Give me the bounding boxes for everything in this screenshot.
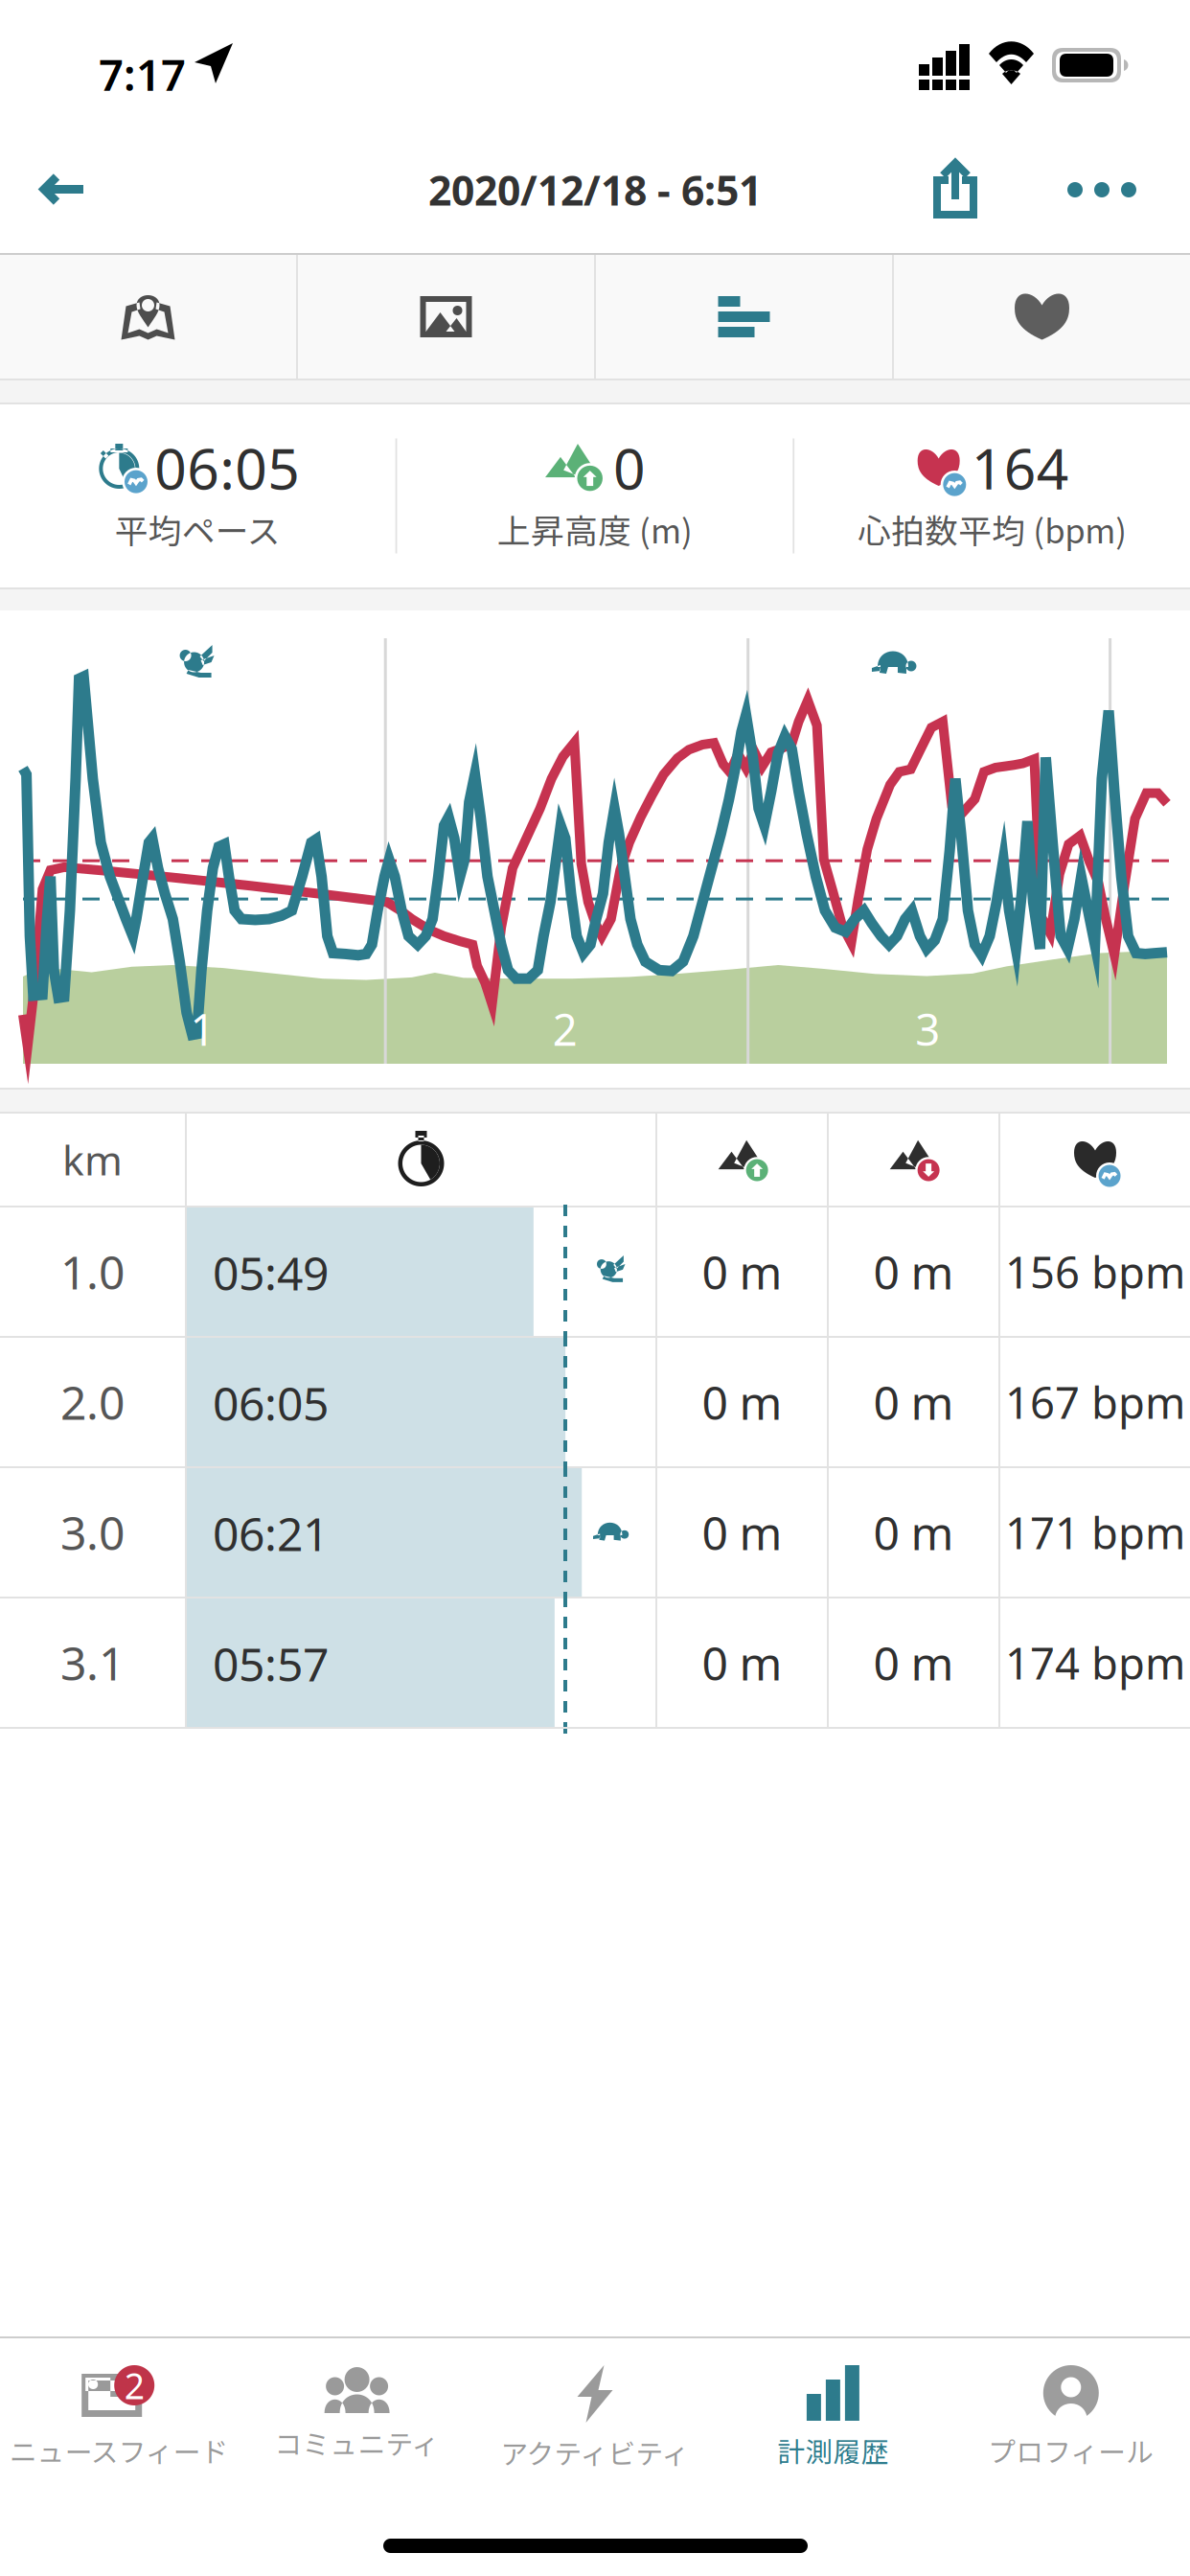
button[interactable]: 2 xyxy=(0,2338,238,2480)
button[interactable]: Map xyxy=(0,255,296,379)
staticText: 0 m xyxy=(702,1632,782,1693)
staticText: 2 xyxy=(553,1000,577,1058)
staticText: 0 m xyxy=(873,1371,954,1433)
button[interactable]: Back xyxy=(2,126,125,253)
button[interactable]: Photos xyxy=(298,255,594,379)
staticText: 0 m xyxy=(873,1502,954,1563)
button[interactable]: 1.0 xyxy=(0,1207,1190,1336)
button[interactable]: 3.0 xyxy=(0,1468,1190,1597)
staticText: 3 xyxy=(915,1000,940,1058)
staticText: 0 m xyxy=(702,1241,782,1302)
staticText: 0 m xyxy=(702,1371,782,1433)
staticText: 05:49 xyxy=(213,1242,329,1303)
staticText: 164 xyxy=(971,430,1069,505)
button[interactable]: 3.1 xyxy=(0,1598,1190,1727)
button[interactable]: More options xyxy=(1041,126,1163,253)
staticText: 05:57 xyxy=(213,1633,329,1694)
button[interactable]: プロフィール xyxy=(952,2338,1190,2480)
staticText: 167 bpm xyxy=(1005,1373,1185,1431)
staticText: 06:05 xyxy=(155,430,300,505)
staticText: 2020/12/18 - 6:51 xyxy=(428,163,762,217)
staticText: 上昇高度 (m) xyxy=(497,505,693,553)
staticText: 1.0 xyxy=(60,1241,125,1302)
staticText: 2 xyxy=(124,2362,144,2409)
button[interactable]: Graphs xyxy=(596,255,892,379)
button[interactable]: Heart rate xyxy=(894,255,1190,379)
button[interactable]: 2.0 xyxy=(0,1338,1190,1466)
staticText: アクティビティ xyxy=(501,2432,689,2472)
staticText: 平均ペース xyxy=(115,505,281,553)
staticText: 171 bpm xyxy=(1005,1504,1185,1561)
staticText: 3.0 xyxy=(60,1502,125,1563)
staticText: 1 xyxy=(190,1000,215,1058)
staticText: km xyxy=(62,1132,123,1187)
button[interactable]: コミュニティ xyxy=(238,2338,476,2480)
staticText: プロフィール xyxy=(988,2430,1154,2470)
staticText: 7:17 xyxy=(99,45,186,103)
staticText: 174 bpm xyxy=(1005,1634,1185,1692)
button[interactable]: Share xyxy=(898,126,1013,253)
staticText: 3.1 xyxy=(60,1632,125,1693)
staticText: 0 m xyxy=(873,1632,954,1693)
staticText: ニュースフィード xyxy=(9,2430,229,2470)
staticText: コミュニティ xyxy=(275,2423,439,2462)
staticText: 心拍数平均 (bpm) xyxy=(858,505,1127,553)
staticText: 2.0 xyxy=(60,1371,125,1433)
button[interactable]: 計測履歴 xyxy=(714,2338,952,2480)
staticText: 156 bpm xyxy=(1005,1243,1185,1301)
button[interactable]: アクティビティ xyxy=(476,2338,714,2480)
staticText: 0 xyxy=(613,430,646,505)
staticText: 0 m xyxy=(702,1502,782,1563)
staticText: 0 m xyxy=(873,1241,954,1302)
staticText: 06:05 xyxy=(213,1372,329,1433)
staticText: 計測履歴 xyxy=(777,2430,889,2470)
staticText: 06:21 xyxy=(213,1503,329,1564)
